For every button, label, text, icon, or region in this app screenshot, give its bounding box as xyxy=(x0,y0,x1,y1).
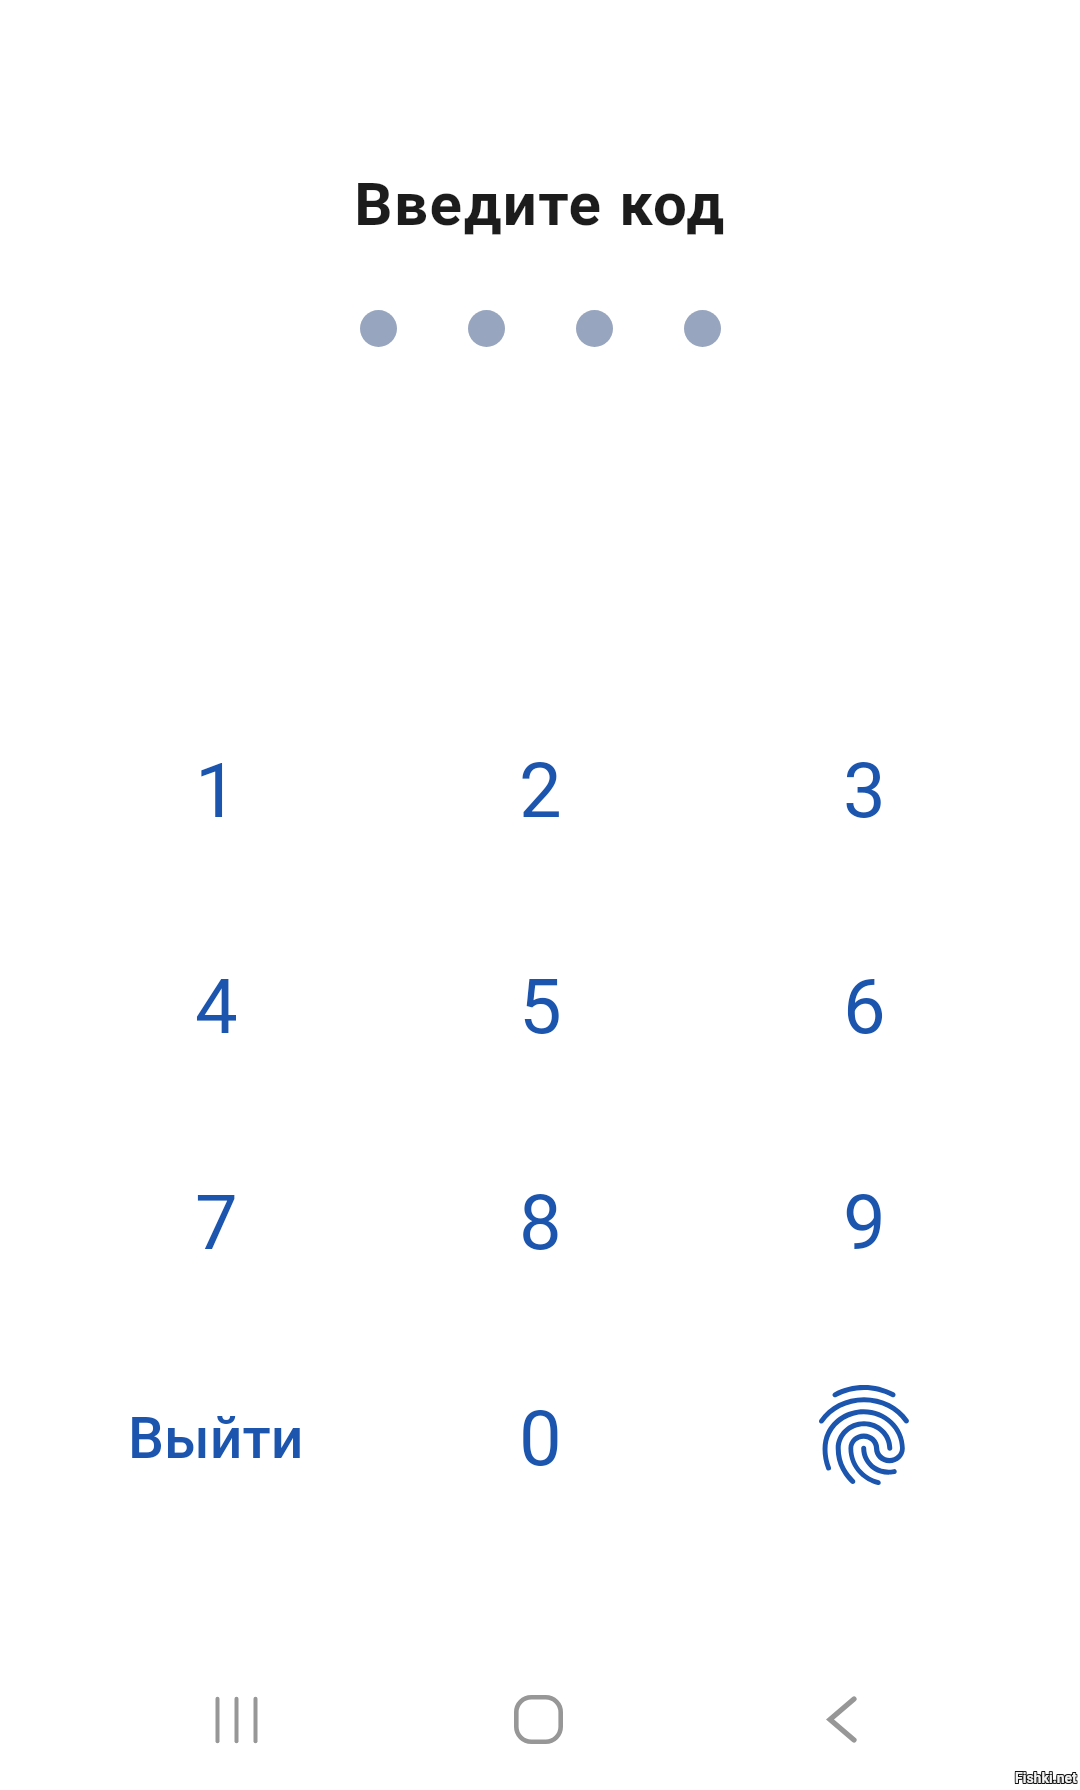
staticText: 7 xyxy=(195,1178,238,1267)
staticText: 6 xyxy=(843,962,886,1051)
staticText: 4 xyxy=(195,962,238,1051)
button[interactable]: Разблокировать отпечатком пальца xyxy=(702,1330,1026,1546)
staticText: Выйти xyxy=(128,1405,304,1472)
button[interactable]: 7 xyxy=(54,1114,378,1330)
staticText: 1 xyxy=(195,746,238,835)
staticText: 2 xyxy=(519,746,562,835)
staticText: Fishki.net xyxy=(1016,1770,1078,1786)
button[interactable]: Домой xyxy=(462,1650,614,1790)
button[interactable]: 4 xyxy=(54,898,378,1114)
button[interactable]: Выйти xyxy=(54,1330,378,1546)
button[interactable]: 5 xyxy=(378,898,702,1114)
button[interactable]: 6 xyxy=(702,898,1026,1114)
button[interactable]: 8 xyxy=(378,1114,702,1330)
staticText: Fishki.net xyxy=(1016,1769,1078,1785)
staticText: Fishki.net xyxy=(1014,1771,1076,1787)
staticText: 0 xyxy=(519,1394,562,1483)
button[interactable]: Недавние приложения xyxy=(160,1650,312,1790)
button[interactable]: 2 xyxy=(378,682,702,898)
button[interactable]: 9 xyxy=(702,1114,1026,1330)
staticText: 9 xyxy=(843,1178,886,1267)
staticText: Fishki.net xyxy=(1014,1770,1076,1786)
staticText: Fishki.net xyxy=(1015,1769,1077,1785)
staticText: Fishki.net xyxy=(1015,1770,1077,1786)
staticText: Введите код xyxy=(0,169,1080,239)
staticText: Fishki.net xyxy=(1015,1771,1077,1787)
staticText: Fishki.net xyxy=(1016,1771,1078,1787)
button[interactable]: 3 xyxy=(702,682,1026,898)
staticText: Fishki.net xyxy=(1014,1769,1076,1785)
button[interactable]: 1 xyxy=(54,682,378,898)
staticText: 3 xyxy=(843,746,886,835)
staticText: 8 xyxy=(519,1178,562,1267)
button[interactable]: 0 xyxy=(378,1330,702,1546)
staticText: 5 xyxy=(519,962,562,1051)
button[interactable]: Назад xyxy=(764,1650,916,1790)
